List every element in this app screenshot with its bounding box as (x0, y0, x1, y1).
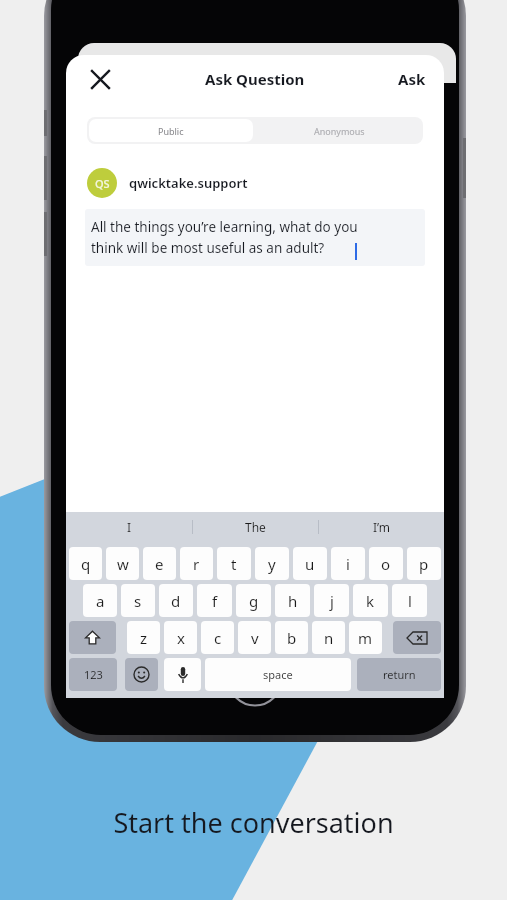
button[interactable]: g (236, 584, 271, 617)
staticText: n (324, 628, 334, 648)
staticText: v (251, 628, 259, 648)
button[interactable]: Dictate (164, 658, 201, 691)
staticText: r (193, 554, 200, 574)
staticText: I (127, 519, 132, 535)
staticText: Start the conversation (113, 804, 394, 841)
button[interactable]: x (164, 621, 197, 654)
staticText: qwicktake.support (129, 174, 248, 192)
staticText: 123 (84, 667, 103, 682)
button[interactable]: j (314, 584, 349, 617)
button[interactable]: Shift (69, 621, 116, 654)
button[interactable]: w (106, 547, 139, 580)
staticText: l (408, 591, 412, 611)
staticText: s (134, 591, 142, 611)
staticText: space (263, 667, 293, 682)
staticText: j (330, 591, 334, 611)
button[interactable]: Emoji (125, 658, 158, 691)
button[interactable]: i (331, 547, 365, 580)
staticText: e (155, 554, 164, 574)
button[interactable]: u (293, 547, 327, 580)
button[interactable]: I’m (319, 512, 444, 541)
button[interactable]: Anonymous (255, 117, 423, 144)
staticText: d (171, 591, 181, 611)
staticText: Ask Question (205, 69, 305, 89)
staticText: z (140, 628, 148, 648)
staticText: Public (158, 125, 184, 137)
button[interactable]: n (312, 621, 345, 654)
staticText: Ask (398, 69, 426, 89)
button[interactable]: c (201, 621, 234, 654)
button[interactable]: p (407, 547, 441, 580)
staticText: o (381, 554, 391, 574)
button[interactable]: Ask (394, 63, 430, 95)
button[interactable]: t (217, 547, 251, 580)
button[interactable]: The (193, 512, 318, 541)
staticText: i (346, 554, 350, 574)
button[interactable]: m (349, 621, 382, 654)
staticText: a (96, 591, 105, 611)
button[interactable]: v (238, 621, 271, 654)
button[interactable]: l (392, 584, 427, 617)
staticText: k (366, 591, 375, 611)
staticText: t (231, 554, 237, 574)
button[interactable]: return (357, 658, 441, 691)
button[interactable]: s (121, 584, 155, 617)
button[interactable]: space (205, 658, 351, 691)
staticText: The (245, 519, 266, 535)
button[interactable]: q (69, 547, 102, 580)
button[interactable]: z (127, 621, 160, 654)
staticText: m (358, 628, 373, 648)
button[interactable]: All the things you’re learning, what do … (85, 209, 425, 266)
staticText: y (268, 554, 276, 574)
staticText: u (305, 554, 315, 574)
button[interactable]: d (159, 584, 193, 617)
button[interactable]: I (66, 512, 192, 541)
staticText: I’m (373, 519, 391, 535)
button[interactable]: e (143, 547, 176, 580)
staticText: x (177, 628, 185, 648)
button[interactable]: y (255, 547, 289, 580)
button[interactable]: Close (84, 63, 116, 95)
button[interactable]: Backspace (393, 621, 441, 654)
button[interactable]: Public (89, 119, 253, 142)
staticText: QS (95, 176, 110, 191)
staticText: return (383, 667, 416, 682)
staticText: Anonymous (314, 125, 365, 137)
staticText: b (287, 628, 297, 648)
button[interactable]: h (275, 584, 310, 617)
staticText: h (288, 591, 298, 611)
button[interactable]: 123 (69, 658, 117, 691)
staticText: c (214, 628, 222, 648)
staticText: f (212, 591, 218, 611)
button[interactable]: r (180, 547, 213, 580)
staticText: g (249, 591, 259, 611)
staticText: w (117, 554, 129, 574)
button[interactable]: b (275, 621, 308, 654)
button[interactable]: f (197, 584, 232, 617)
button[interactable]: k (353, 584, 388, 617)
staticText: q (81, 554, 91, 574)
staticText: All the things you’re learning, what do … (91, 218, 358, 257)
button[interactable]: o (369, 547, 403, 580)
button[interactable]: a (83, 584, 117, 617)
staticText: p (419, 554, 429, 574)
